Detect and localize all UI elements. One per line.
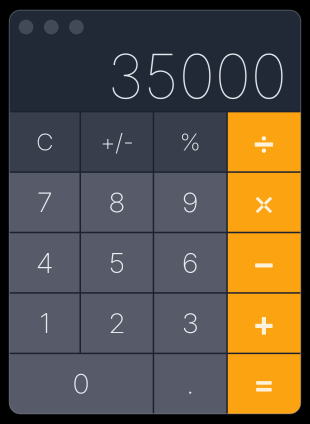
staticText: 8 <box>109 185 125 219</box>
staticText: +/- <box>100 127 133 156</box>
staticText: 6 <box>182 246 198 280</box>
staticText: . <box>187 367 194 401</box>
button[interactable]: 7 <box>9 172 80 233</box>
button[interactable]: Divide <box>227 112 301 172</box>
button[interactable]: 4 <box>9 232 80 293</box>
staticText: 35000 <box>108 39 287 114</box>
button[interactable]: 9 <box>153 172 227 233</box>
staticText: 0 <box>73 367 90 401</box>
staticText: 1 <box>40 306 50 340</box>
staticText: % <box>180 127 201 156</box>
button[interactable]: Minus <box>227 232 301 293</box>
button[interactable]: 0 <box>9 353 153 414</box>
button[interactable]: Multiply <box>227 172 301 233</box>
staticText: 2 <box>109 306 125 340</box>
button[interactable]: 1 <box>9 293 80 353</box>
button[interactable]: 6 <box>153 232 227 293</box>
staticText: 3 <box>182 306 198 340</box>
staticText: C <box>36 127 53 156</box>
staticText: 5 <box>109 246 124 280</box>
button[interactable]: +/- <box>80 112 153 172</box>
staticText: 4 <box>36 246 53 280</box>
button[interactable]: 8 <box>80 172 153 233</box>
button[interactable]: 2 <box>80 293 153 353</box>
button[interactable]: Equals <box>227 353 301 414</box>
button[interactable]: . <box>153 353 227 414</box>
button[interactable]: % <box>153 112 227 172</box>
staticText: 9 <box>182 185 198 219</box>
button[interactable]: Plus <box>227 293 301 353</box>
staticText: 7 <box>37 185 52 219</box>
button[interactable]: 5 <box>80 232 153 293</box>
button[interactable]: 3 <box>153 293 227 353</box>
button[interactable]: C <box>9 112 80 172</box>
